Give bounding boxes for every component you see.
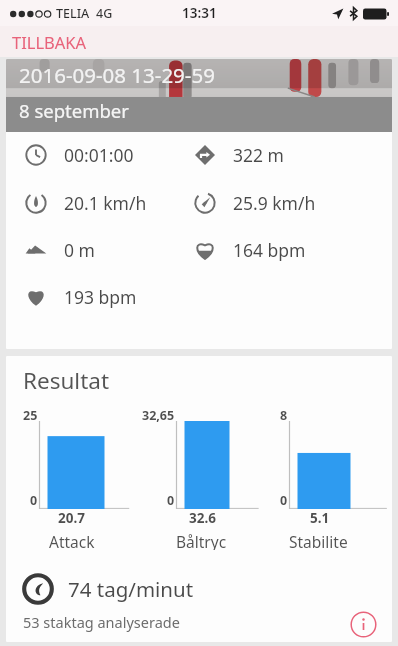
staticText: 32,65 xyxy=(142,407,175,424)
staticText: TILLBAKA xyxy=(12,31,87,53)
staticText: Båltryck xyxy=(176,531,229,550)
staticText: Attack xyxy=(49,531,95,550)
staticText: 193 bpm xyxy=(64,285,137,309)
staticText: 74 tag/minut xyxy=(68,575,194,603)
staticText: 20.1 km/h xyxy=(64,191,147,215)
staticText: 322 m xyxy=(233,143,284,167)
staticText: 25 xyxy=(23,407,38,424)
staticText: 25.9 km/h xyxy=(233,191,316,215)
staticText: 2016-09-08 13-29-59 xyxy=(19,61,215,89)
staticText: 13:31 xyxy=(182,4,217,22)
staticText: Stabilitet xyxy=(289,531,350,550)
staticText: 53 staktag analyserade xyxy=(23,612,180,632)
button[interactable]: Information xyxy=(348,609,378,639)
staticText: 8 september xyxy=(19,98,129,123)
staticText: 20.7 xyxy=(58,509,85,527)
staticText: 8 xyxy=(280,407,288,424)
staticText: Resultat xyxy=(23,365,110,396)
staticText: 5.1 xyxy=(310,509,330,527)
button[interactable]: TILLBAKA xyxy=(0,27,99,57)
staticText: 164 bpm xyxy=(233,238,306,262)
staticText: 0 xyxy=(280,492,288,509)
staticText: 00:01:00 xyxy=(64,143,134,167)
staticText: 0 xyxy=(30,492,38,509)
staticText: 32.6 xyxy=(189,509,216,527)
staticText: TELIA xyxy=(56,5,90,22)
staticText: 0 m xyxy=(64,238,95,262)
staticText: 4G xyxy=(96,5,113,22)
staticText: 0 xyxy=(167,492,175,509)
